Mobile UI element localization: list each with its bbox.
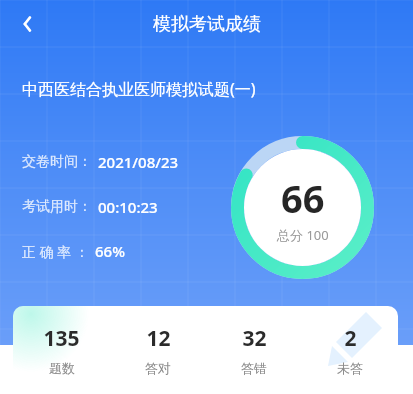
staticText: 正 确 率 ： [22, 242, 89, 261]
staticText: 题数 [49, 360, 75, 376]
staticText: 2 [344, 324, 357, 353]
staticText: 2021/08/23 [98, 152, 179, 172]
button[interactable]: Back [8, 4, 48, 44]
staticText: 答对 [145, 360, 171, 376]
staticText: 交卷时间： [22, 153, 92, 171]
staticText: 中西医结合执业医师模拟试题(一) [22, 78, 256, 100]
staticText: 135 [43, 324, 80, 353]
staticText: 32 [242, 324, 267, 353]
button[interactable]: 12 [110, 324, 206, 376]
staticText: 未答 [337, 360, 363, 376]
staticText: 66 [281, 172, 325, 224]
button[interactable]: 135 [13, 324, 110, 376]
staticText: 模拟考试成绩 [153, 13, 261, 36]
staticText: 66% [95, 241, 125, 261]
button[interactable]: 2 [302, 324, 398, 376]
staticText: 00:10:23 [98, 197, 158, 217]
staticText: 12 [146, 324, 171, 353]
staticText: 考试用时： [22, 198, 92, 216]
staticText: 总分 100 [277, 226, 329, 244]
staticText: 答错 [241, 360, 267, 376]
button[interactable]: 32 [206, 324, 302, 376]
